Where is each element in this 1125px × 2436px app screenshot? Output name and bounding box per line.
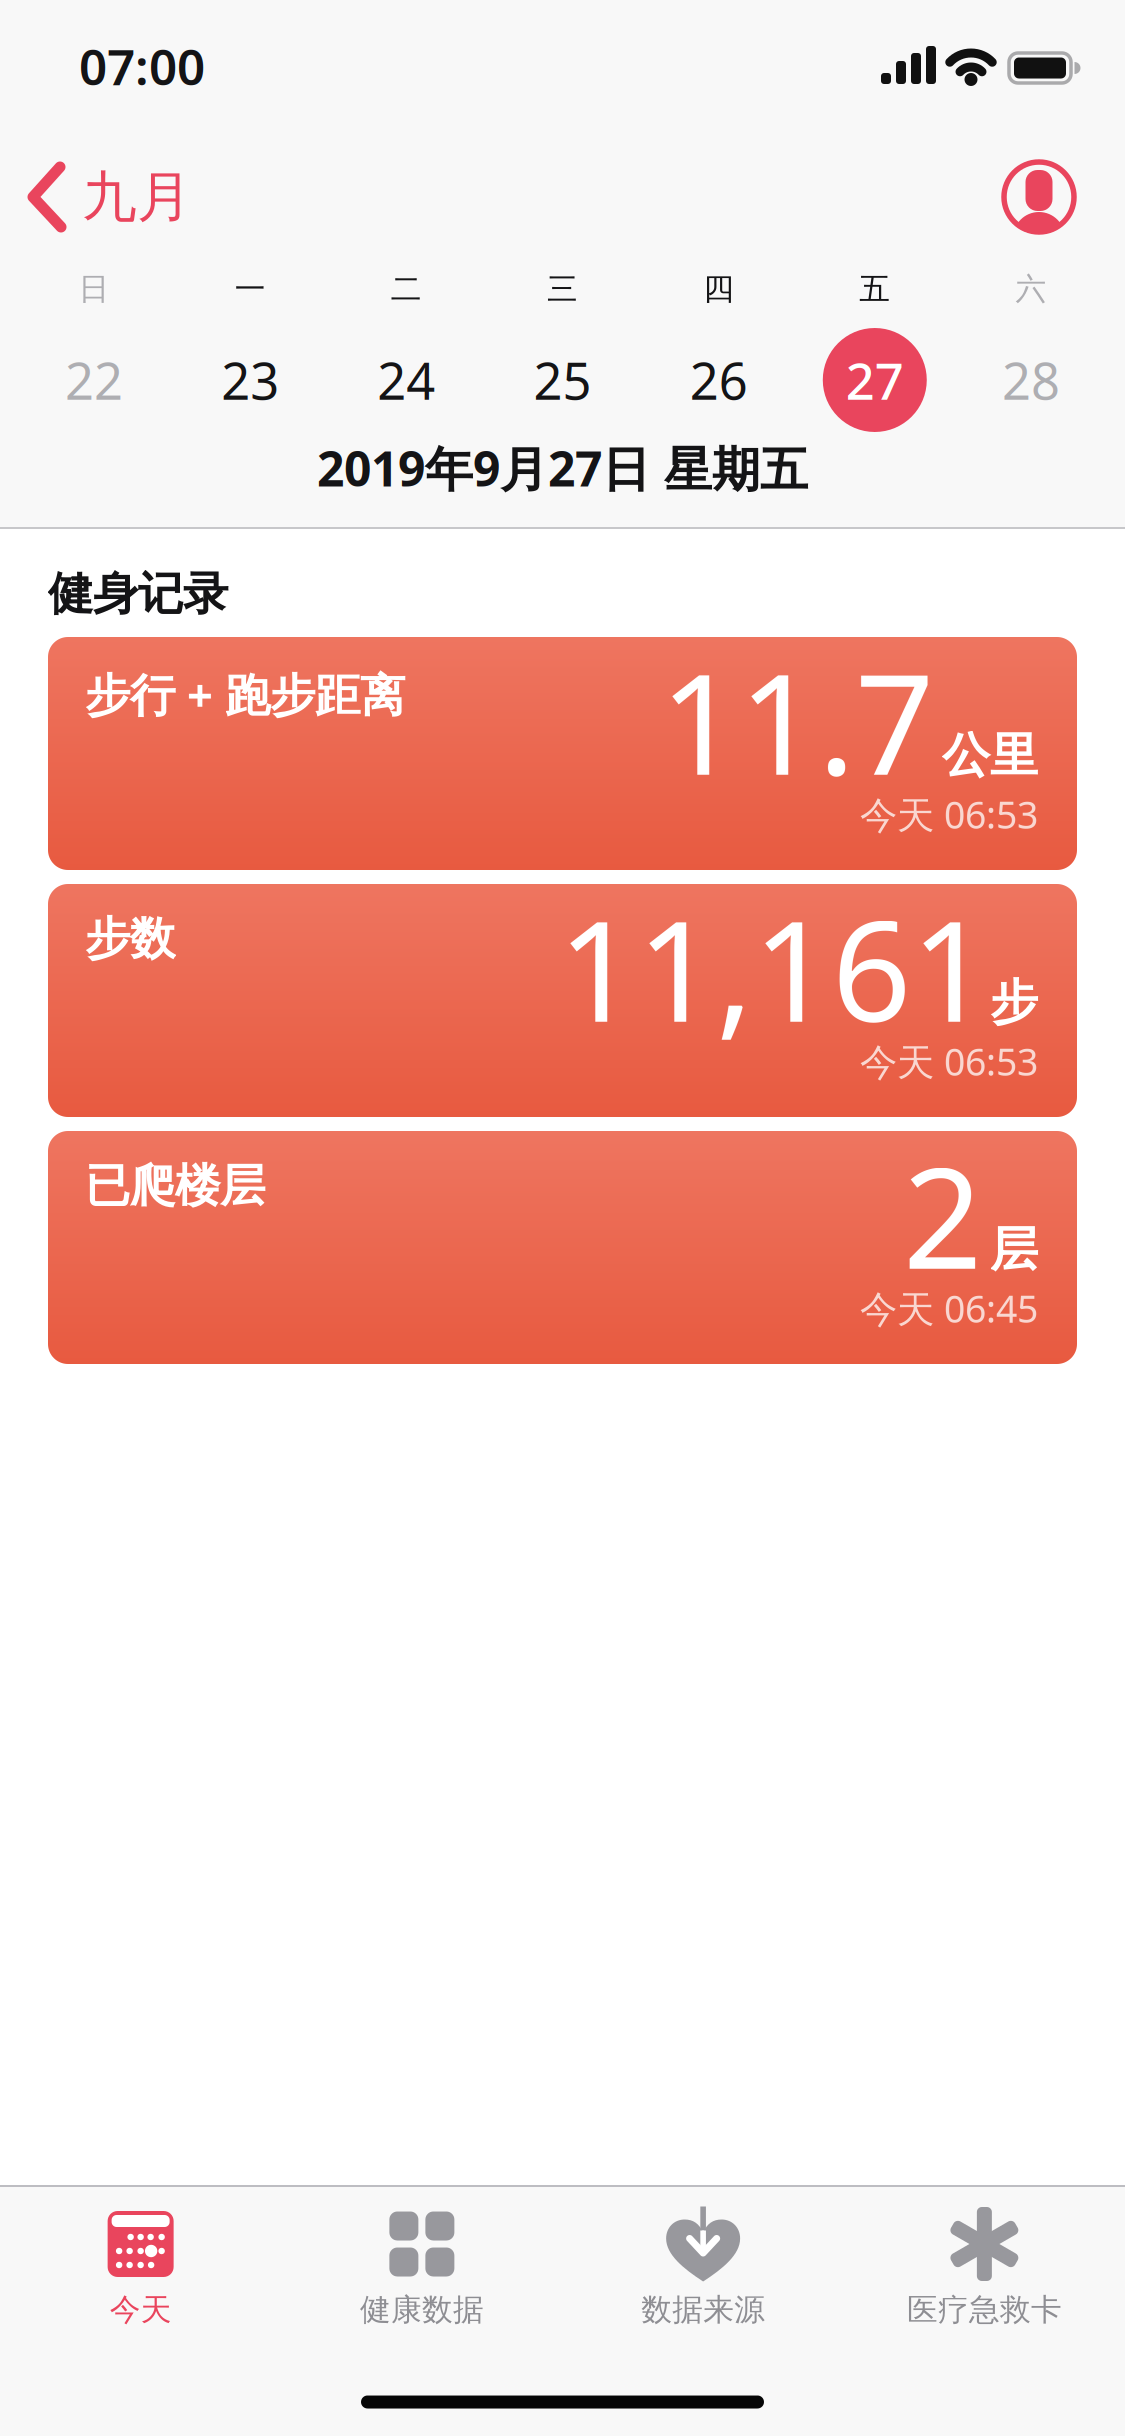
staticText: 步数 <box>85 911 175 967</box>
staticText: 23 <box>221 346 279 414</box>
staticText: 07:00 <box>79 33 205 99</box>
staticText: 24 <box>377 346 435 414</box>
staticText: 一 <box>235 270 266 308</box>
staticText: 26 <box>690 346 748 414</box>
staticText: 日 <box>79 270 110 308</box>
button[interactable]: 步行 + 跑步距离 <box>48 637 1077 870</box>
button[interactable]: 个人资料 <box>1002 160 1076 234</box>
staticText: 健康数据 <box>360 2291 484 2329</box>
button[interactable]: 医疗急救卡 <box>844 2187 1125 2436</box>
button[interactable]: 步数 <box>48 884 1077 1117</box>
button[interactable]: 今天 <box>0 2187 281 2436</box>
staticText: 数据来源 <box>641 2291 765 2329</box>
staticText: 今天 06:45 <box>860 1283 1038 1333</box>
staticText: 医疗急救卡 <box>907 2291 1062 2329</box>
staticText: 步行 + 跑步距离 <box>85 664 405 724</box>
button[interactable]: 27 <box>797 316 953 444</box>
button[interactable]: 28 <box>953 316 1109 444</box>
staticText: 2019年9月27日 星期五 <box>317 436 808 500</box>
staticText: 层 <box>990 1220 1038 1279</box>
staticText: 九月 <box>82 163 192 230</box>
staticText: 11.7 <box>660 629 934 813</box>
staticText: 今天 06:53 <box>860 1036 1038 1086</box>
staticText: 三 <box>547 270 578 308</box>
staticText: 四 <box>703 270 734 308</box>
staticText: 28 <box>1002 346 1060 414</box>
staticText: 步 <box>990 973 1038 1032</box>
button[interactable]: 26 <box>641 316 797 444</box>
staticText: 健身记录 <box>48 566 228 622</box>
staticText: 二 <box>391 270 422 308</box>
staticText: 2 <box>903 1123 982 1307</box>
staticText: 六 <box>1015 270 1046 308</box>
button[interactable]: 22 <box>16 316 172 444</box>
staticText: 今天 06:53 <box>860 789 1038 839</box>
staticText: 五 <box>859 270 890 308</box>
staticText: 25 <box>533 346 591 414</box>
staticText: 27 <box>846 346 904 414</box>
button[interactable]: 数据来源 <box>562 2187 844 2436</box>
staticText: 公里 <box>942 726 1038 785</box>
button[interactable]: 24 <box>328 316 484 444</box>
button[interactable]: 23 <box>172 316 328 444</box>
button[interactable]: 25 <box>484 316 640 444</box>
staticText: 11,161 <box>558 876 990 1060</box>
staticText: 已爬楼层 <box>85 1158 265 1214</box>
button[interactable]: 健康数据 <box>281 2187 562 2436</box>
button[interactable]: 已爬楼层 <box>48 1131 1077 1364</box>
staticText: 22 <box>65 346 123 414</box>
button[interactable]: 九月 <box>32 163 192 230</box>
staticText: 今天 <box>110 2291 172 2329</box>
